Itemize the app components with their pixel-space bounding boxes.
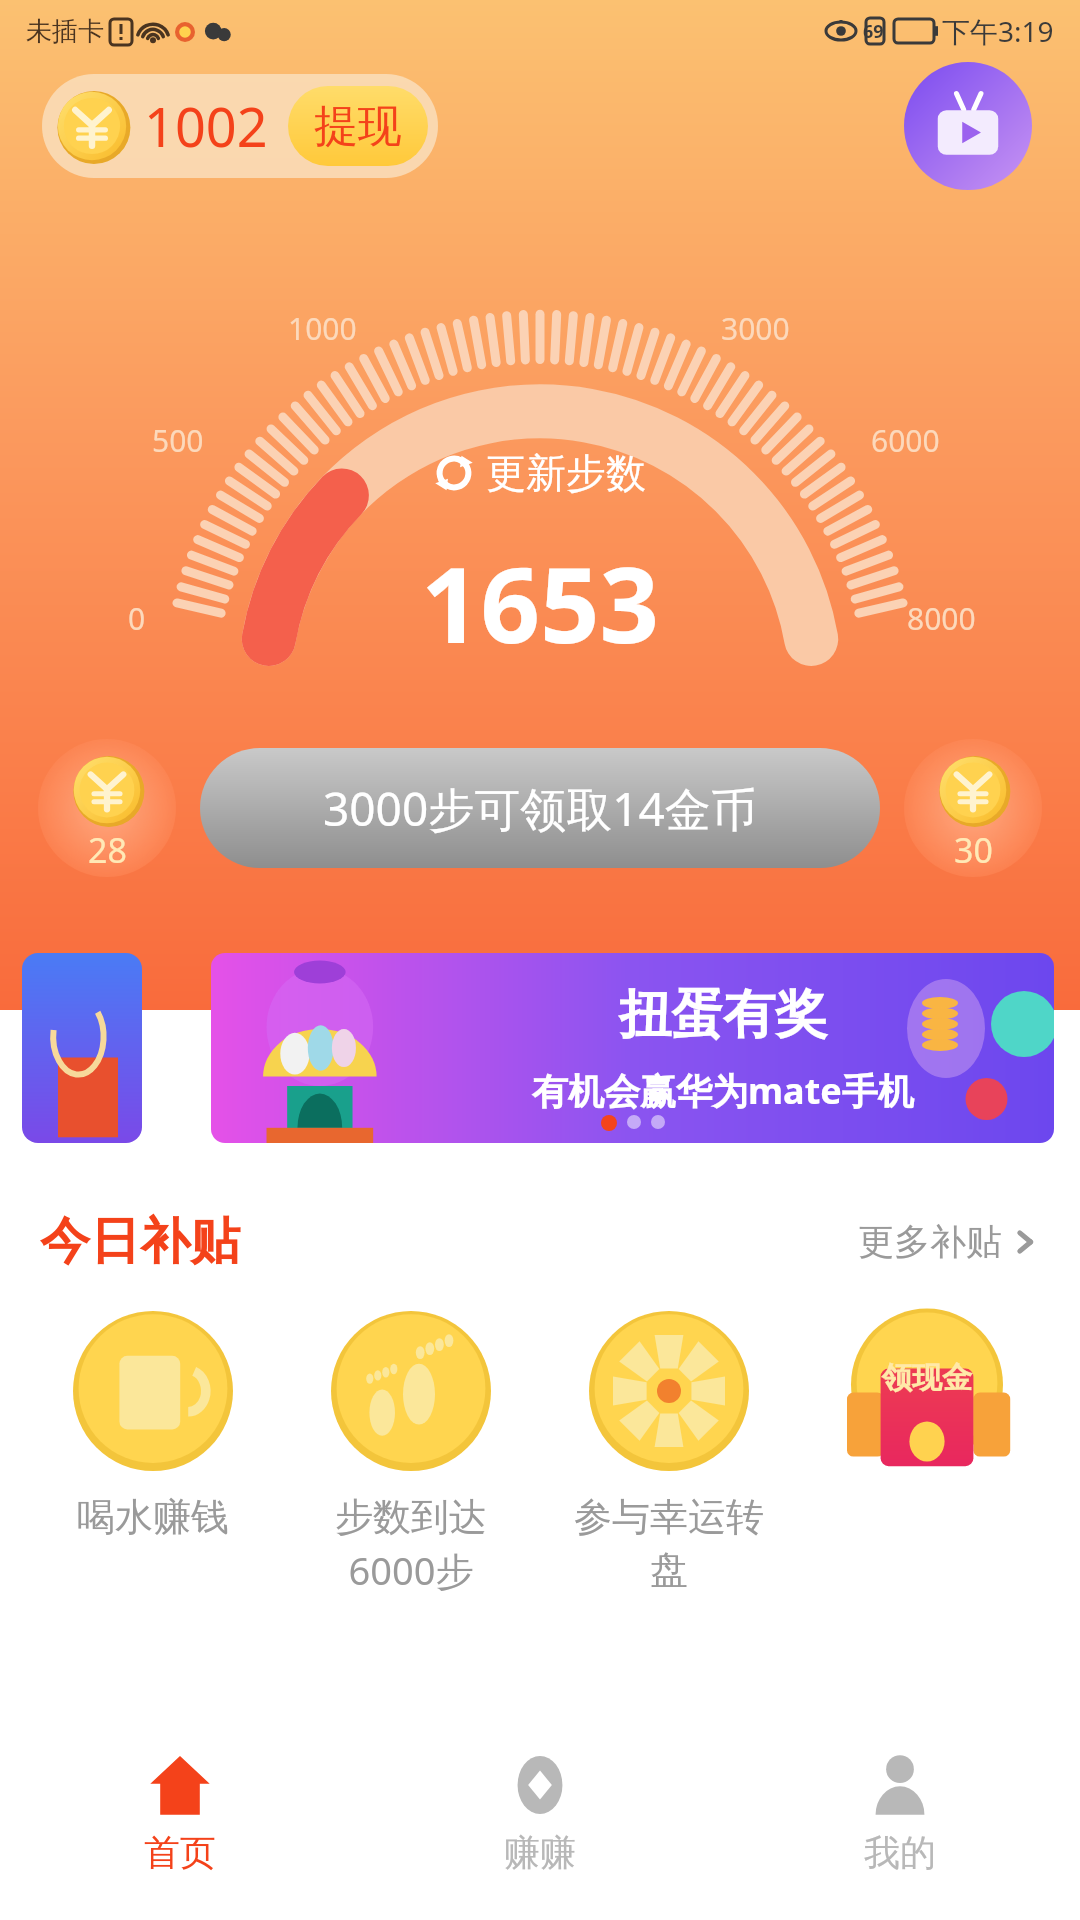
button[interactable]: 我的 [720, 1724, 1080, 1894]
button[interactable]: Watch video [904, 62, 1032, 190]
staticText: 更多补贴 [858, 1219, 1002, 1264]
staticText: 1002 [144, 89, 268, 163]
staticText: 下午3:19 [942, 12, 1054, 50]
button[interactable]: 28 [38, 739, 176, 877]
staticText: 更新步数 [486, 448, 646, 498]
button[interactable]: 喝水赚钱 [24, 1307, 282, 1545]
staticText: 今日补贴 [40, 1210, 240, 1273]
button[interactable]: 1002 [42, 74, 438, 178]
staticText: 首页 [144, 1830, 216, 1875]
button[interactable]: 更新步数 [426, 444, 654, 502]
staticText: 赚赚 [504, 1830, 576, 1875]
button[interactable]: 赚赚 [360, 1724, 720, 1894]
button[interactable]: 首页 [0, 1724, 360, 1894]
button[interactable] [22, 953, 142, 1143]
staticText: 参与幸运转 盘 [574, 1493, 764, 1595]
staticText: 30 [954, 827, 993, 873]
staticText: 3000步可领取14金币 [323, 777, 757, 840]
staticText: 喝水赚钱 [77, 1493, 229, 1541]
staticText: 1000 [288, 308, 357, 349]
staticText: 步数到达 6000步 [335, 1493, 487, 1597]
staticText: 领现金 [882, 1359, 972, 1397]
button[interactable]: 领现金 [798, 1307, 1056, 1497]
staticText: 未插卡 [26, 15, 104, 48]
staticText: 提现 [314, 99, 402, 154]
staticText: 我的 [864, 1830, 936, 1875]
staticText: 8000 [907, 598, 976, 639]
button[interactable]: 更多补贴 [852, 1213, 1044, 1270]
staticText: 0 [128, 598, 146, 639]
staticText: 有机会赢华为mate手机 [532, 1066, 914, 1115]
staticText: 28 [88, 827, 127, 873]
button[interactable]: 30 [904, 739, 1042, 877]
staticText: 500 [152, 420, 204, 461]
button[interactable]: 参与幸运转 盘 [540, 1307, 798, 1599]
button[interactable]: 步数到达 6000步 [282, 1307, 540, 1601]
staticText: 3000 [721, 308, 790, 349]
staticText: 6000 [871, 420, 940, 461]
button[interactable]: 3000步可领取14金币 [200, 748, 880, 868]
staticText: 扭蛋有奖 [619, 982, 827, 1048]
button[interactable]: 提现 [288, 86, 428, 166]
button[interactable]: 扭蛋有奖 [211, 953, 1054, 1143]
staticText: 1653 [421, 532, 659, 674]
staticText: 69 [863, 19, 884, 44]
